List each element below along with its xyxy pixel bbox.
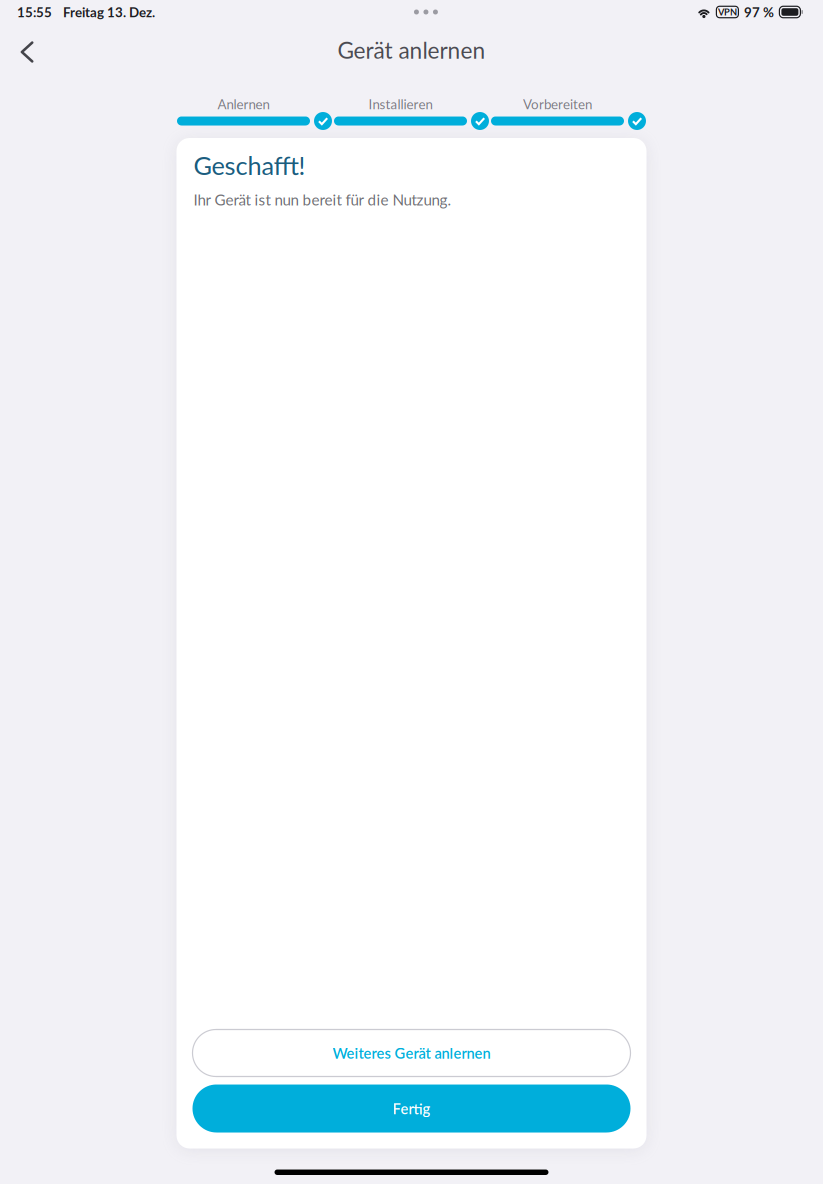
staticText: 97 % (744, 4, 774, 20)
staticText: Ihr Gerät ist nun bereit für die Nutzung… (193, 190, 451, 209)
staticText: Geschafft! (193, 150, 305, 180)
staticText: Freitag 13. Dez. (63, 4, 155, 20)
staticText: Gerät anlernen (337, 36, 485, 64)
staticText: Fertig (392, 1100, 430, 1117)
staticText: 15:55 (17, 4, 52, 20)
button[interactable]: Zurück (5, 26, 49, 74)
staticText: Anlernen (217, 96, 269, 112)
button[interactable]: Fertig (192, 1084, 630, 1132)
staticText: Vorbereiten (523, 96, 592, 112)
button[interactable]: Weiteres Gerät anlernen (192, 1029, 630, 1076)
staticText: Weiteres Gerät anlernen (332, 1044, 490, 1062)
staticText: Installieren (368, 96, 432, 112)
staticText: VPN (718, 6, 737, 18)
